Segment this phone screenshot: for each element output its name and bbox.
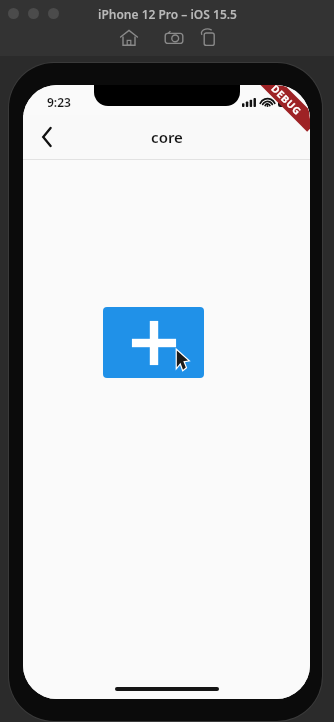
- button[interactable]: Add: [103, 307, 204, 378]
- staticText: 9:23: [47, 94, 71, 110]
- button[interactable]: [48, 8, 59, 19]
- button[interactable]: Back: [29, 119, 65, 155]
- button[interactable]: Screenshot: [164, 28, 184, 48]
- staticText: iPhone 12 Pro – iOS 15.5: [98, 6, 237, 22]
- button[interactable]: [8, 8, 19, 19]
- button[interactable]: [28, 8, 39, 19]
- staticText: DEBUG: [268, 85, 305, 118]
- button[interactable]: Rotate: [199, 28, 219, 48]
- staticText: core: [151, 127, 183, 147]
- button[interactable]: Home: [119, 28, 139, 48]
